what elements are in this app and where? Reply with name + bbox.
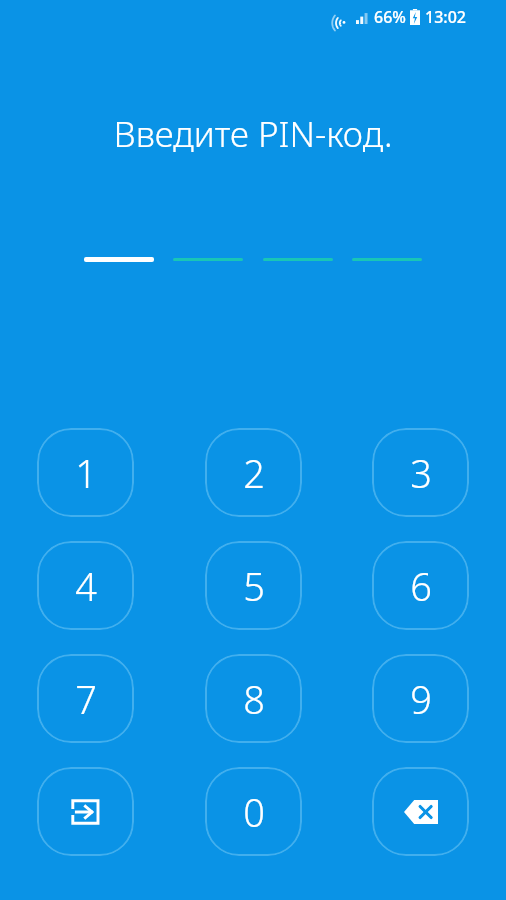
staticText: 2 <box>243 447 265 499</box>
staticText: 9 <box>410 673 432 725</box>
staticText: 8 <box>243 673 265 725</box>
staticText: Введите PIN-код. <box>0 110 506 158</box>
button[interactable]: 2 <box>205 428 302 517</box>
button[interactable]: 5 <box>205 541 302 630</box>
button[interactable]: 3 <box>372 428 469 517</box>
button[interactable]: Log in <box>37 767 134 856</box>
button[interactable]: 8 <box>205 654 302 743</box>
button[interactable]: 4 <box>37 541 134 630</box>
staticText: 7 <box>75 673 97 725</box>
staticText: 66% <box>374 6 406 28</box>
button[interactable]: Backspace <box>372 767 469 856</box>
staticText: 3 <box>410 447 432 499</box>
staticText: 4 <box>75 560 97 612</box>
button[interactable]: 1 <box>37 428 134 517</box>
staticText: 5 <box>243 560 265 612</box>
staticText: 6 <box>410 560 432 612</box>
staticText: 1 <box>75 447 97 499</box>
button[interactable]: 6 <box>372 541 469 630</box>
staticText: 0 <box>243 786 265 838</box>
button[interactable]: 9 <box>372 654 469 743</box>
staticText: 13:02 <box>425 6 466 28</box>
button[interactable]: 7 <box>37 654 134 743</box>
button[interactable]: 0 <box>205 767 302 856</box>
